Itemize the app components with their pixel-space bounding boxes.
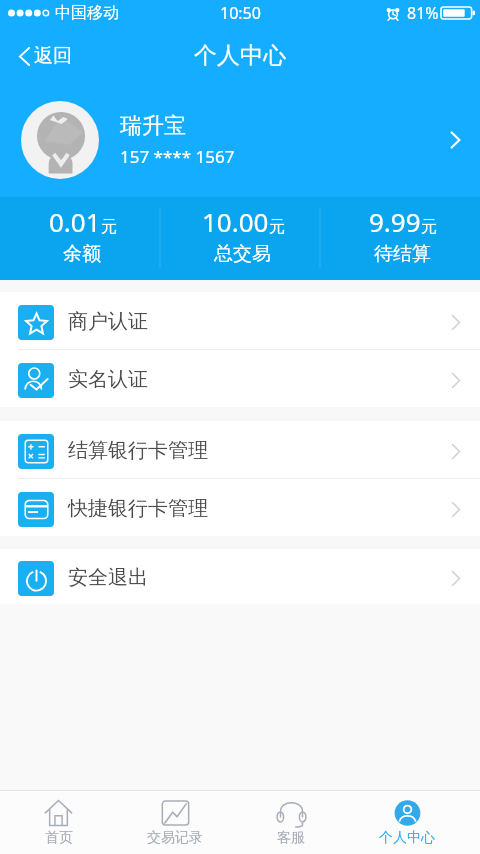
button[interactable]: 交易记录 [117, 791, 233, 854]
staticText: 81% [407, 2, 439, 24]
staticText: 待结算 [374, 242, 431, 266]
button[interactable]: 客服 [233, 791, 349, 854]
button[interactable]: 实名认证 [0, 350, 480, 407]
button[interactable]: 个人中心 [349, 791, 465, 854]
button[interactable]: 商户认证 [0, 292, 480, 349]
button[interactable]: 快捷银行卡管理 [0, 479, 480, 536]
staticText: 交易记录 [147, 829, 203, 847]
button[interactable]: 0.01 [0, 197, 160, 280]
button[interactable]: 安全退出 [0, 549, 480, 604]
staticText: 10:50 [220, 2, 261, 24]
staticText: 0.01 [49, 204, 101, 239]
staticText: 瑞升宝 [120, 112, 186, 140]
staticText: 实名认证 [68, 367, 148, 392]
staticText: 10.00 [202, 204, 269, 239]
staticText: 元 [421, 217, 437, 237]
staticText: 个人中心 [194, 41, 286, 70]
staticText: 个人中心 [379, 829, 435, 847]
staticText: 总交易 [214, 242, 271, 266]
staticText: 商户认证 [68, 309, 148, 334]
staticText: 客服 [277, 829, 305, 847]
button[interactable]: 首页 [0, 791, 117, 854]
button[interactable]: 瑞升宝 [0, 82, 480, 197]
staticText: 元 [269, 217, 285, 237]
staticText: 余额 [63, 242, 101, 266]
staticText: 157 **** 1567 [120, 145, 235, 168]
staticText: 元 [101, 217, 117, 237]
button[interactable]: 结算银行卡管理 [0, 421, 480, 478]
staticText: 结算银行卡管理 [68, 438, 208, 463]
staticText: 快捷银行卡管理 [68, 496, 208, 521]
staticText: 首页 [45, 829, 73, 847]
staticText: 安全退出 [68, 565, 148, 590]
button[interactable]: 9.99 [320, 197, 480, 280]
button[interactable]: 10.00 [160, 197, 320, 280]
staticText: 返回 [34, 44, 72, 68]
button[interactable]: 返回 [19, 44, 72, 68]
staticText: 9.99 [369, 204, 421, 239]
staticText: 中国移动 [55, 3, 119, 23]
